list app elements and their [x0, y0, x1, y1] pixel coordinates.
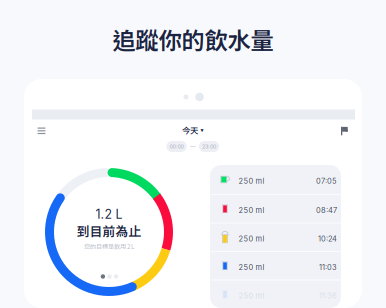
- button[interactable]: 250 ml: [210, 252, 341, 279]
- button[interactable]: 今天: [178, 121, 208, 139]
- staticText: 11:03: [319, 263, 337, 272]
- staticText: 250 ml: [238, 176, 264, 185]
- button[interactable]: 250 ml: [210, 165, 341, 194]
- button[interactable]: Menu: [30, 121, 52, 141]
- staticText: 250 ml: [238, 234, 264, 243]
- button[interactable]: Daily goal: [335, 122, 353, 140]
- staticText: 今天: [182, 124, 198, 136]
- staticText: 23:00: [202, 143, 216, 150]
- staticText: —: [190, 143, 195, 150]
- staticText: 11:36: [319, 291, 337, 300]
- button[interactable]: 250 ml: [210, 195, 341, 222]
- staticText: 追蹤你的飲水量: [112, 22, 273, 56]
- staticText: 250 ml: [238, 291, 264, 300]
- staticText: 250 ml: [238, 206, 264, 215]
- staticText: 到目前為止: [76, 221, 141, 240]
- staticText: 您的目標是飲用 2 L: [84, 242, 134, 251]
- staticText: 08:47: [316, 206, 337, 215]
- staticText: 250 ml: [238, 263, 264, 272]
- staticText: 10:24: [318, 234, 337, 243]
- staticText: 00:00: [170, 143, 184, 150]
- staticText: ▾: [201, 127, 204, 134]
- staticText: 1.2 L: [95, 207, 122, 222]
- staticText: 07:05: [316, 176, 337, 185]
- button[interactable]: 250 ml: [210, 223, 341, 251]
- button[interactable]: 250 ml: [210, 280, 341, 308]
